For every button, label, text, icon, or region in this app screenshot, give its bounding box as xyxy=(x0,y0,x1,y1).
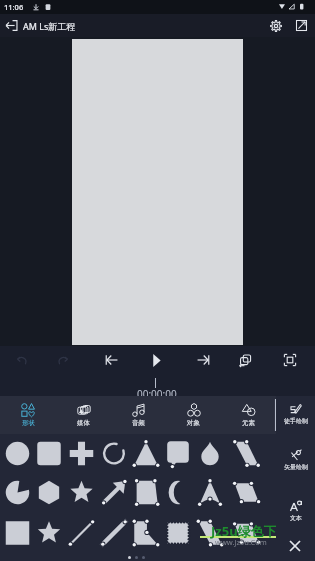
button[interactable]: 徒手绘制 xyxy=(276,403,315,425)
staticText: 文本 xyxy=(290,514,302,522)
button[interactable]: 矢量绘制 xyxy=(276,449,315,471)
button[interactable]: 媒体 xyxy=(56,396,111,434)
staticText: 元素 xyxy=(242,419,255,427)
button[interactable]: Export xyxy=(290,14,313,37)
staticText: 媒体 xyxy=(77,419,90,427)
button[interactable]: 音频 xyxy=(111,396,166,434)
button[interactable]: Play xyxy=(145,349,167,371)
staticText: www.Jz5u.Com xyxy=(215,537,267,547)
button[interactable]: 对象 xyxy=(166,396,221,434)
button[interactable]: 文本 xyxy=(276,500,315,522)
button[interactable]: Undo xyxy=(11,349,33,371)
staticText: AM Ls新工程 xyxy=(23,20,76,32)
staticText: 11:06 xyxy=(4,2,24,12)
button[interactable]: Fit to screen xyxy=(279,349,301,371)
button[interactable]: Redo xyxy=(52,349,74,371)
staticText: 形状 xyxy=(22,419,35,427)
button[interactable]: Settings xyxy=(264,14,287,37)
button[interactable]: Skip to start xyxy=(100,349,122,371)
staticText: Jz5u绿色下载 xyxy=(211,522,290,540)
button[interactable]: 形状 xyxy=(0,396,56,434)
staticText: 徒手绘制 xyxy=(284,417,308,425)
button[interactable]: Close xyxy=(285,536,305,556)
button[interactable]: Skip to end xyxy=(193,349,215,371)
staticText: 音频 xyxy=(132,419,145,427)
staticText: 对象 xyxy=(187,419,200,427)
button[interactable]: Loop xyxy=(234,349,256,371)
staticText: 00:00:00 xyxy=(137,387,177,401)
button[interactable]: 元素 xyxy=(221,396,276,434)
staticText: 矢量绘制 xyxy=(284,463,308,471)
button[interactable]: Back xyxy=(0,14,22,37)
